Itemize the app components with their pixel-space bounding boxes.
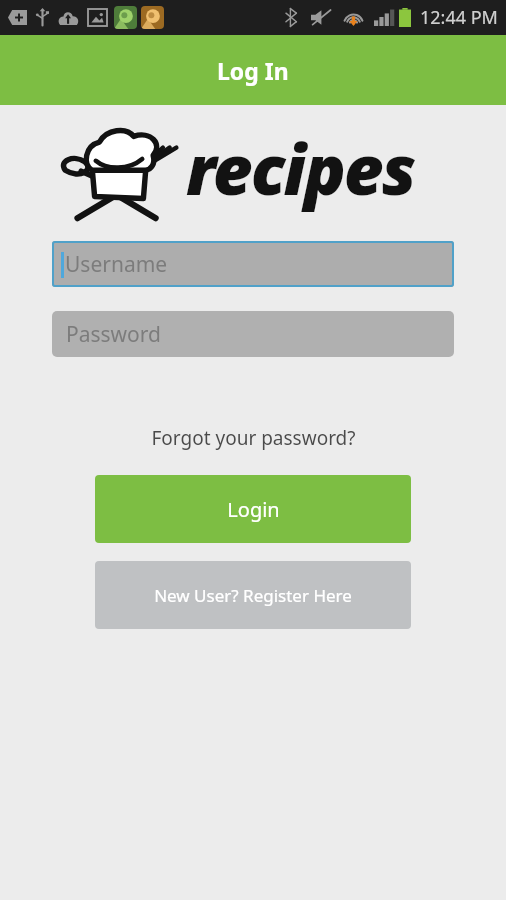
button[interactable]: Forgot your password? bbox=[145, 423, 362, 453]
staticText: Password bbox=[66, 320, 161, 349]
button[interactable]: Login bbox=[95, 475, 411, 543]
staticText: Login bbox=[227, 496, 280, 523]
staticText: 12:44 PM bbox=[420, 5, 498, 30]
button[interactable]: Password bbox=[52, 311, 454, 357]
staticText: Username bbox=[65, 250, 168, 279]
staticText: for an empty wallet bbox=[224, 197, 420, 201]
staticText: Forgot your password? bbox=[151, 425, 356, 451]
staticText: Log In bbox=[217, 55, 289, 86]
button[interactable]: New User? Register Here bbox=[95, 561, 411, 629]
staticText: New User? Register Here bbox=[154, 584, 352, 607]
staticText: recipes bbox=[186, 121, 415, 215]
button[interactable]: Username bbox=[52, 241, 454, 287]
